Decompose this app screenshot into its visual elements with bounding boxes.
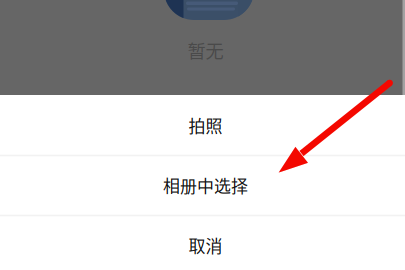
staticText: 拍照 <box>188 113 222 137</box>
staticText: 相册中选择 <box>163 173 248 197</box>
button[interactable]: 相册中选择 <box>0 155 405 215</box>
button[interactable]: 取消 <box>0 215 405 270</box>
button[interactable]: 拍照 <box>0 95 405 155</box>
staticText: 暂无 <box>187 37 223 63</box>
staticText: 取消 <box>188 233 222 257</box>
